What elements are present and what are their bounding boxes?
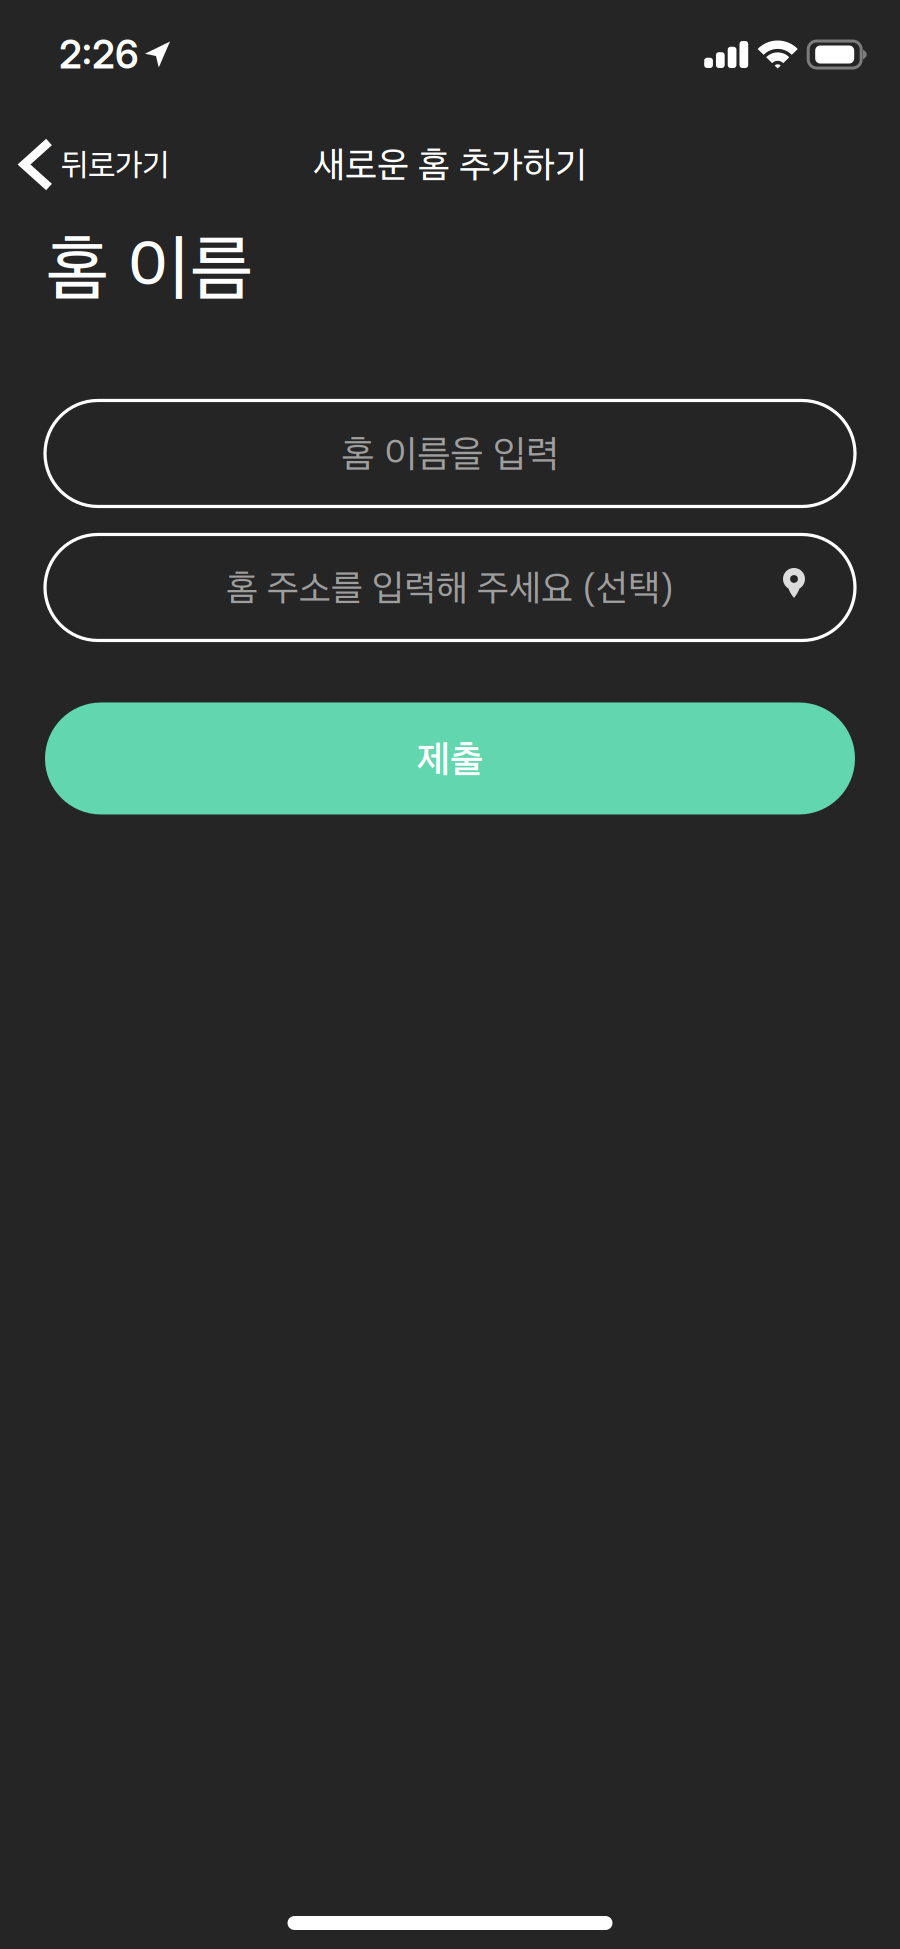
button[interactable]: 현재 위치 사용 (761, 547, 827, 619)
staticText: 제출 (417, 735, 483, 781)
staticText: 홈 이름을 입력 (341, 430, 559, 476)
button[interactable]: 홈 주소를 입력해 주세요 (선택) (0, 534, 900, 640)
button[interactable]: 제출 (0, 702, 900, 814)
staticText: 홈 주소를 입력해 주세요 (선택) (226, 565, 674, 610)
button[interactable]: 뒤로가기 (0, 136, 169, 193)
staticText: 뒤로가기 (61, 145, 169, 184)
button[interactable]: 홈 이름을 입력 (0, 400, 900, 506)
staticText: 홈 이름 (46, 224, 253, 311)
staticText: 새로운 홈 추가하기 (313, 142, 587, 187)
staticText: 2:26 (59, 31, 139, 78)
